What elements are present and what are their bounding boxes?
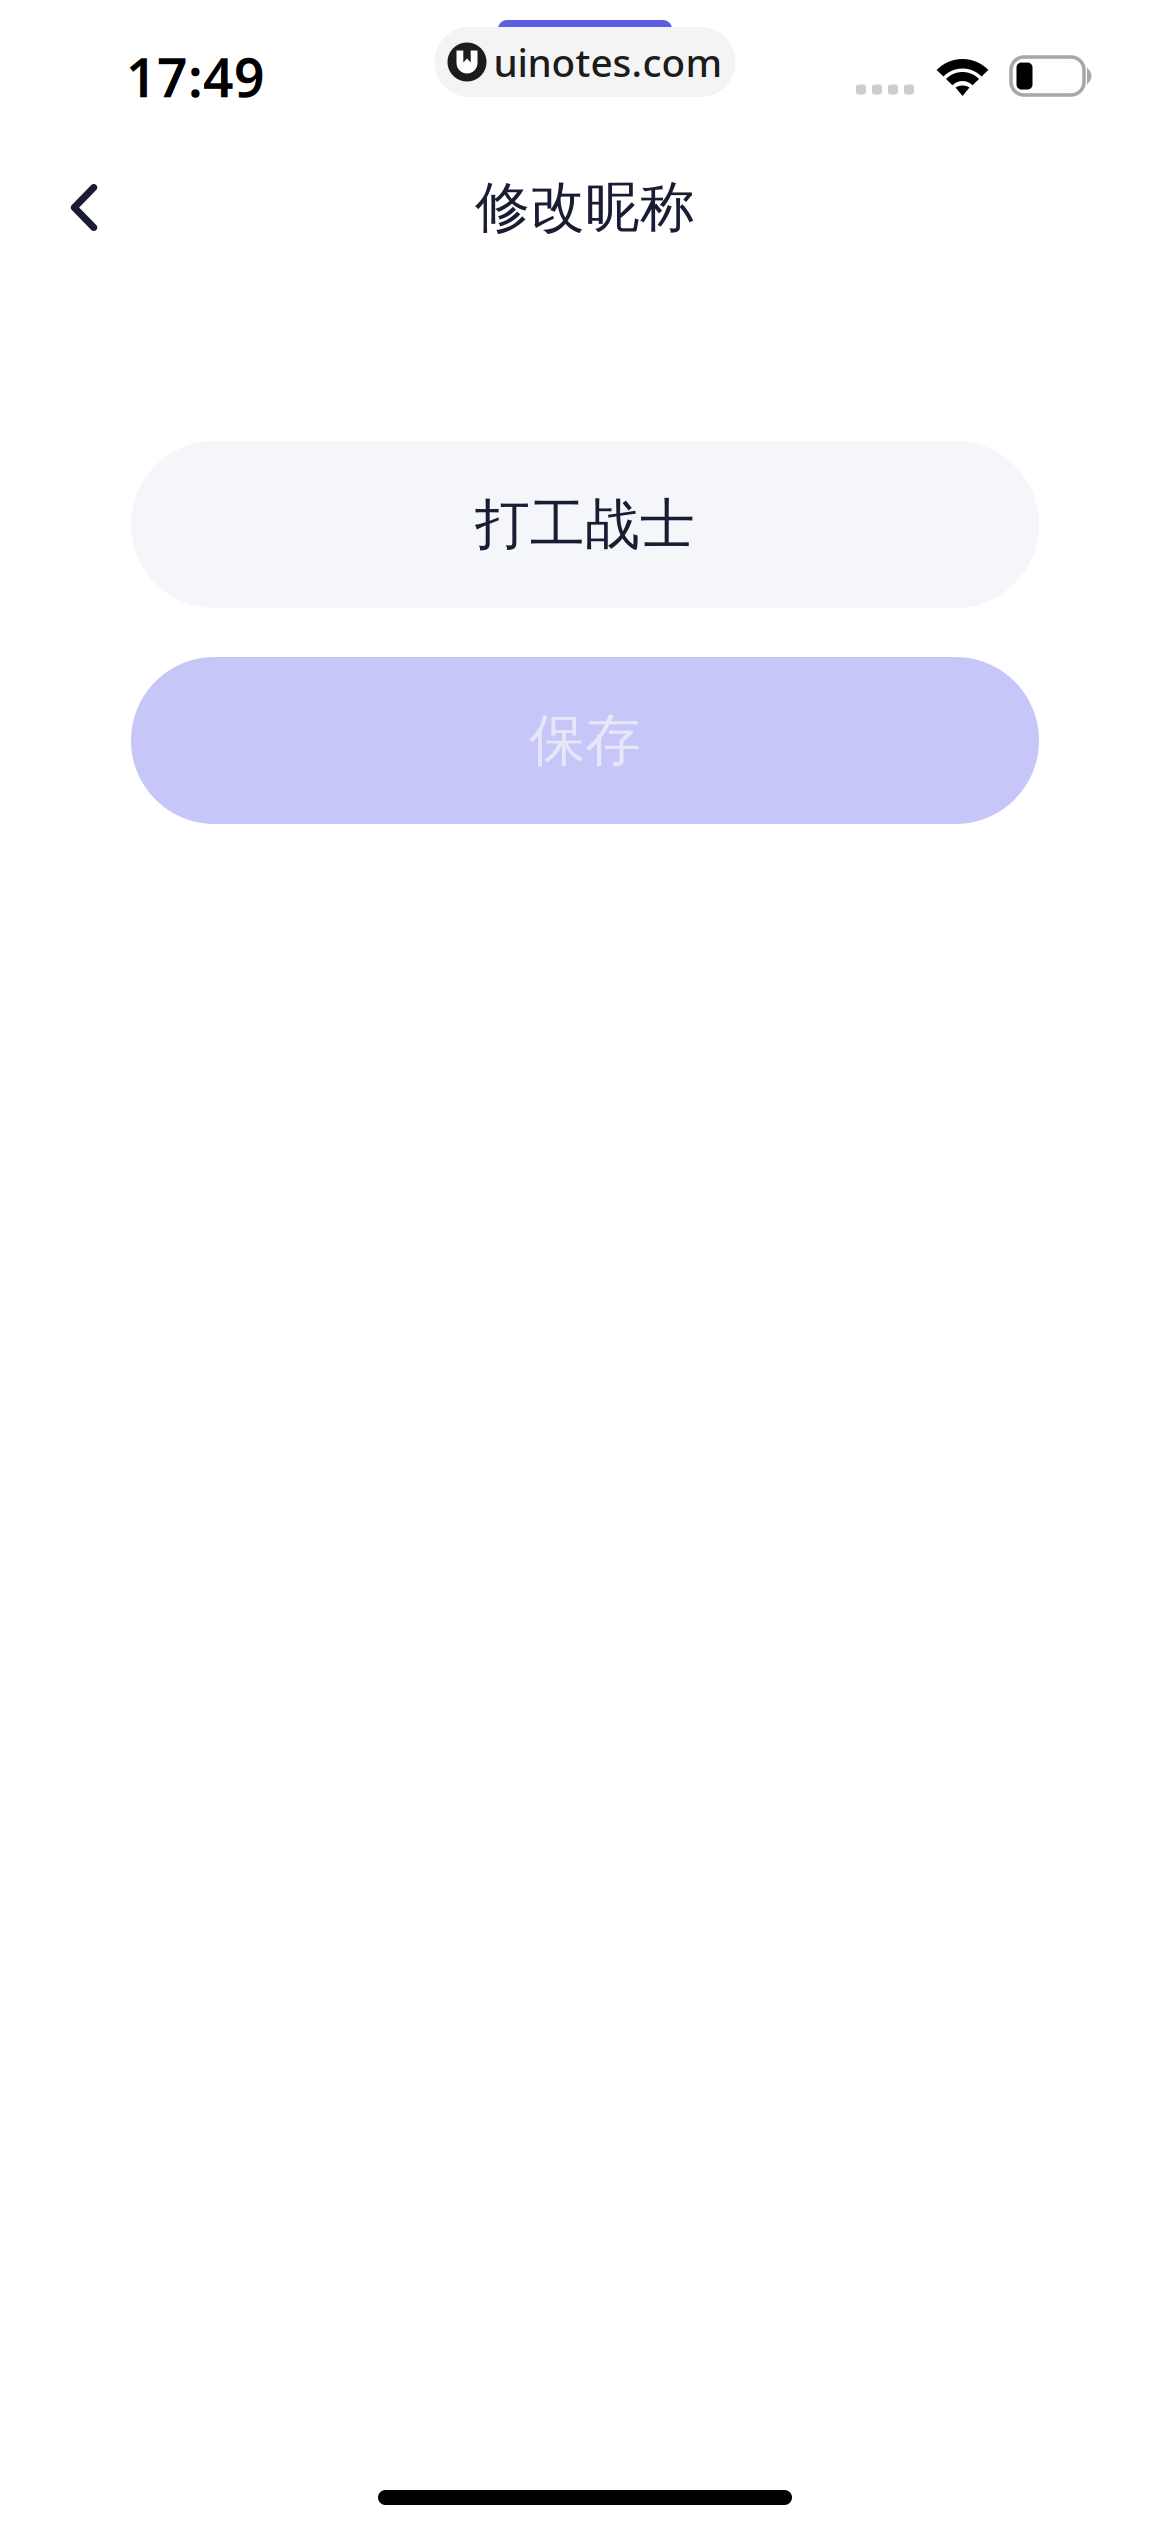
staticText: uinotes.com (493, 36, 722, 88)
button[interactable]: 保存 (131, 657, 1039, 824)
staticText: 打工战士 (475, 491, 695, 558)
button[interactable]: Back (40, 163, 128, 251)
staticText: 保存 (529, 706, 641, 775)
staticText: 17:49 (126, 41, 265, 112)
button[interactable]: 打工战士 (131, 441, 1039, 608)
staticText: 修改昵称 (475, 174, 695, 241)
